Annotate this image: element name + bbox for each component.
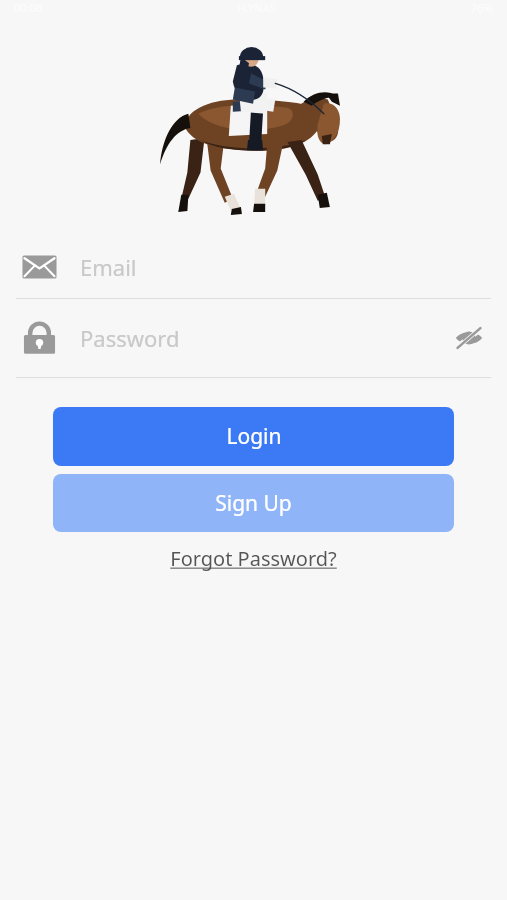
button[interactable]: Sign Up: [53, 474, 454, 532]
button[interactable]: Password: [0, 299, 507, 377]
staticText: Email: [80, 252, 137, 282]
button[interactable]: Show password: [447, 316, 491, 360]
button[interactable]: Login: [53, 407, 454, 466]
button[interactable]: Forgot Password?: [162, 541, 345, 576]
staticText: Login: [226, 422, 282, 451]
staticText: Password: [80, 323, 180, 353]
button[interactable]: Email: [0, 236, 507, 298]
staticText: Forgot Password?: [170, 545, 337, 572]
staticText: Sign Up: [215, 489, 292, 518]
